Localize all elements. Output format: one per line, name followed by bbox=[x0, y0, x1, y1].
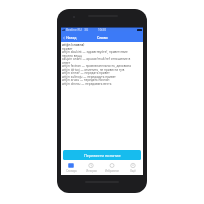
staticText: witjin fectran — привлекательность, дико… bbox=[62, 64, 131, 68]
staticText: Ещё bbox=[130, 169, 136, 173]
staticText: akujzin anbnt — apuace/mult/ref отношени… bbox=[62, 57, 131, 61]
staticText: Перевести понятие bbox=[84, 153, 121, 158]
staticText: witjin olnexu — передавать весть bbox=[62, 82, 112, 86]
staticText: 10:30 bbox=[98, 28, 106, 32]
staticText: ответ bbox=[62, 61, 71, 65]
button[interactable]: Словарь bbox=[61, 160, 81, 175]
button[interactable]: История bbox=[81, 160, 101, 175]
staticText: witjin idrisoj — отметить, не привести т… bbox=[62, 68, 125, 72]
button[interactable]: Back bbox=[62, 35, 77, 40]
staticText: Словарь bbox=[66, 169, 77, 173]
staticText: witjin sultnoju — передадуть привет bbox=[62, 75, 116, 79]
staticText: witjin aruxu — передать поклон bbox=[62, 78, 110, 82]
other: Back bbox=[62, 36, 66, 40]
button[interactable]: Перевести понятие bbox=[63, 150, 141, 160]
button[interactable]: Избранное bbox=[101, 160, 122, 175]
staticText: Слово bbox=[97, 35, 108, 40]
staticText: witjin abukint — здравствуйте!, приветст… bbox=[62, 50, 128, 54]
staticText: witjin (словна) bbox=[62, 43, 85, 47]
staticText: привет bbox=[62, 47, 73, 51]
staticText: перено вещц bbox=[62, 54, 82, 58]
button[interactable]: Ещё bbox=[122, 160, 143, 175]
staticText: Beeline RU 3G bbox=[66, 28, 89, 32]
staticText: История bbox=[86, 169, 97, 173]
staticText: Назад bbox=[66, 35, 77, 40]
staticText: Избранное bbox=[105, 169, 119, 173]
staticText: witjin sinner — передать привет bbox=[62, 71, 110, 75]
